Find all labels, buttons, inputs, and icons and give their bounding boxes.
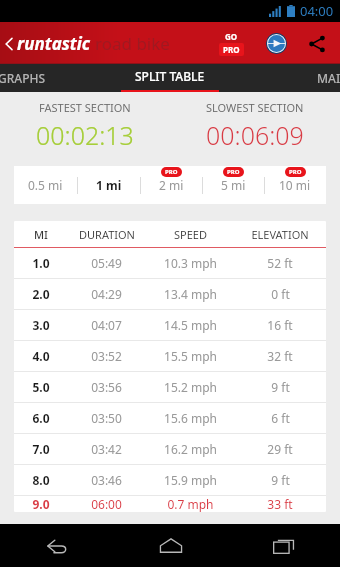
staticText: DURATION [79,227,135,242]
staticText: PRO [165,168,178,176]
button[interactable]: Share [304,31,330,57]
staticText: 05:49 [91,255,122,271]
button[interactable]: 9.0 [14,496,326,512]
staticText: 10.3 mph [164,255,217,271]
staticText: 33 ft [267,496,293,512]
button[interactable]: 4.0 [14,341,326,371]
staticText: 04:29 [91,286,122,302]
staticText: 52 ft [267,255,293,271]
button[interactable]: 3.0 [14,310,326,340]
button[interactable]: 5 mi [202,166,264,204]
button[interactable]: 2 mi [140,166,202,204]
staticText: 14.5 mph [164,317,217,333]
staticText: 03:42 [91,441,122,457]
staticText: 1.0 [32,255,50,271]
staticText: 7.0 [32,441,50,457]
staticText: MI [34,227,48,242]
button[interactable]: 8.0 [14,465,326,495]
staticText: 15.6 mph [164,410,217,426]
staticText: 04:07 [91,317,122,333]
staticText: SPEED [174,227,207,242]
button[interactable]: Recent apps [227,524,340,567]
staticText: 0.5 mi [28,177,63,193]
staticText: 16 ft [267,317,293,333]
staticText: 0.7 mph [167,496,214,512]
staticText: 1 mi [96,177,122,193]
staticText: 0 ft [271,286,290,302]
staticText: 32 ft [267,348,293,364]
staticText: 4.0 [32,348,50,364]
staticText: SLOWEST SECTION [206,100,304,115]
button[interactable]: SPLIT TABLE [117,64,223,92]
staticText: FASTEST SECTION [39,100,131,115]
staticText: runtastic [17,32,91,55]
staticText: 06:00 [91,496,122,512]
staticText: road bike [95,32,170,55]
button[interactable]: GO [215,28,248,59]
staticText: 8.0 [32,472,50,488]
staticText: SPLIT TABLE [135,68,205,84]
button[interactable]: 1.0 [14,248,326,278]
staticText: 03:56 [91,379,122,395]
staticText: PRO [223,44,240,55]
staticText: 9 ft [271,472,290,488]
staticText: 03:50 [91,410,122,426]
button[interactable]: Live tracking [262,29,291,58]
staticText: 5 mi [221,177,246,193]
staticText: ELEVATION [251,227,309,242]
button[interactable]: Home [114,524,227,567]
staticText: 6 ft [271,410,290,426]
staticText: 3.0 [32,317,50,333]
button[interactable]: 0.5 mi [14,166,77,204]
staticText: 03:52 [91,348,122,364]
staticText: 5.0 [32,379,50,395]
staticText: 04:00 [300,2,334,20]
staticText: GO [225,31,238,42]
staticText: 00:02:13 [36,118,134,152]
staticText: 15.9 mph [164,472,217,488]
button[interactable]: 6.0 [14,403,326,433]
staticText: 16.2 mph [164,441,217,457]
button[interactable]: MAIN [307,70,340,86]
staticText: 6.0 [32,410,50,426]
staticText: 15.5 mph [164,348,217,364]
staticText: 03:46 [91,472,122,488]
button[interactable]: GRAPHS [0,70,48,86]
staticText: 2.0 [32,286,50,302]
staticText: PRO [289,168,302,176]
staticText: 2 mi [159,177,184,193]
staticText: 00:06:09 [206,118,304,152]
staticText: PRO [227,168,240,176]
other: Back [4,37,14,51]
staticText: 13.4 mph [164,286,217,302]
button[interactable]: 7.0 [14,434,326,464]
staticText: 9.0 [32,496,50,512]
button[interactable]: Back [0,28,178,59]
staticText: 15.2 mph [164,379,217,395]
button[interactable]: Back [0,524,114,567]
button[interactable]: 5.0 [14,372,326,402]
button[interactable]: 1 mi [77,166,140,204]
staticText: 9 ft [271,379,290,395]
button[interactable]: 10 mi [264,166,326,204]
staticText: 10 mi [279,177,311,193]
staticText: 29 ft [267,441,293,457]
button[interactable]: 2.0 [14,279,326,309]
